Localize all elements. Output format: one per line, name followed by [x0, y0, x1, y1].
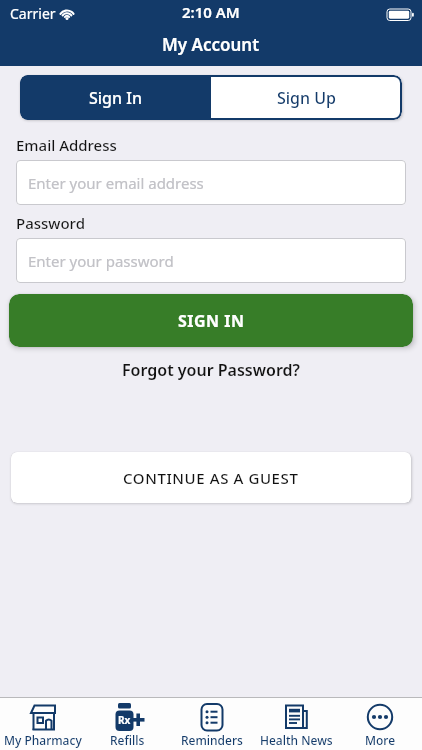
staticText: Sign Up — [277, 87, 336, 109]
staticText: 2:10 AM — [182, 2, 240, 22]
staticText: Sign In — [89, 87, 142, 109]
staticText: SIGN IN — [178, 310, 245, 332]
staticText: CONTINUE AS A GUEST — [123, 468, 299, 488]
button[interactable]: My Pharmacy — [0, 698, 85, 750]
staticText: Enter your password — [28, 251, 174, 271]
staticText: Health News — [260, 732, 333, 748]
button[interactable]: Enter your email address — [16, 160, 406, 205]
staticText: Email Address — [16, 135, 117, 155]
staticText: Refills — [110, 732, 145, 748]
button[interactable]: Enter your password — [16, 238, 406, 283]
staticText: More — [365, 732, 396, 748]
button[interactable]: Reminders — [170, 698, 254, 750]
button[interactable]: CONTINUE AS A GUEST — [11, 452, 411, 503]
staticText: Enter your email address — [28, 173, 204, 193]
staticText: My Pharmacy — [4, 732, 82, 748]
button[interactable]: Forgot your Password? — [122, 359, 300, 381]
button[interactable]: SIGN IN — [9, 294, 413, 347]
staticText: Password — [16, 213, 85, 233]
staticText: Rx — [118, 713, 131, 727]
button[interactable]: More — [338, 698, 422, 750]
button[interactable]: Health News — [254, 698, 338, 750]
staticText: Carrier — [10, 4, 56, 23]
staticText: My Account — [162, 33, 260, 56]
button[interactable]: Rx — [85, 698, 170, 750]
button[interactable]: Sign Up — [211, 75, 402, 120]
staticText: Reminders — [181, 732, 243, 748]
button[interactable]: Sign In — [20, 75, 211, 120]
